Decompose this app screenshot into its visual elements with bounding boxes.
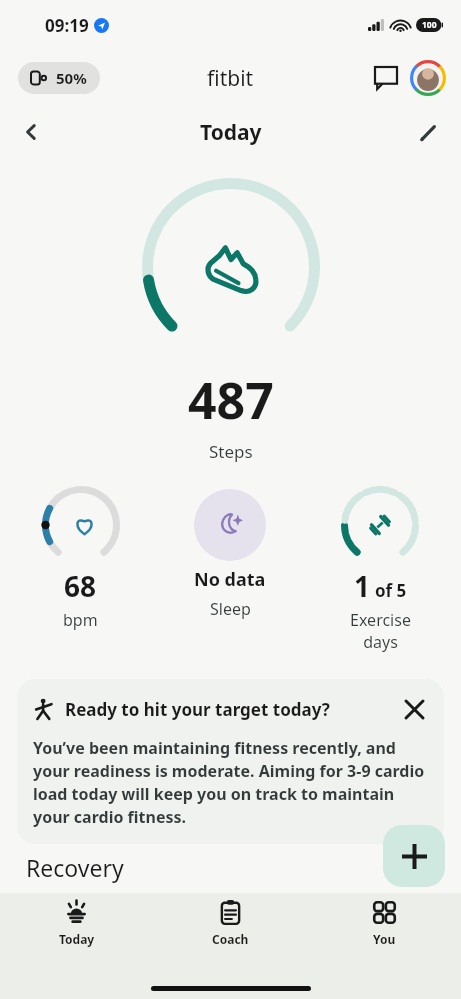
button[interactable]: Close (400, 695, 428, 723)
staticText: No data (194, 567, 266, 592)
button[interactable]: Today (0, 899, 153, 965)
staticText: 68 (64, 567, 97, 605)
button[interactable]: Profile (409, 59, 447, 97)
staticText: Recovery (26, 852, 124, 883)
staticText: Coach (212, 931, 249, 947)
button[interactable]: Coach (153, 899, 307, 965)
button[interactable]: Add (383, 825, 445, 887)
staticText: bpm (63, 609, 98, 631)
button[interactable]: Messages (369, 61, 403, 95)
staticText: Today (59, 931, 95, 947)
staticText: of 5 (375, 579, 407, 602)
staticText: 487 (188, 366, 274, 434)
staticText: Sleep (210, 598, 251, 620)
button[interactable]: You (307, 899, 461, 965)
staticText: 1 (354, 567, 371, 605)
staticText: You’ve been maintaining fitness recently… (33, 737, 428, 828)
button[interactable]: Ready to hit your target today? (17, 679, 444, 844)
staticText: Steps (209, 440, 253, 463)
button[interactable]: Edit (407, 111, 449, 153)
staticText: You (373, 931, 396, 947)
staticText: 09:19 (45, 14, 89, 37)
button[interactable]: No data (155, 485, 305, 620)
button[interactable]: 1 (305, 485, 455, 653)
staticText: 100 (422, 19, 437, 31)
staticText: Today (200, 118, 262, 147)
staticText: Ready to hit your target today? (65, 698, 400, 721)
staticText: Exercise days (350, 609, 411, 653)
button[interactable]: Back (10, 111, 52, 153)
button[interactable]: 68 (6, 485, 155, 631)
staticText: fitbit (207, 64, 254, 93)
staticText: 50% (56, 68, 87, 88)
button[interactable]: 50% (18, 62, 100, 94)
